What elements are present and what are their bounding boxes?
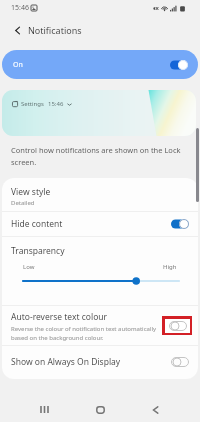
button[interactable]: Home [86,395,115,422]
staticText: Low [23,263,35,271]
staticText: On [13,60,23,70]
staticText: Notifications [28,24,82,36]
staticText: View style [11,186,51,198]
staticText: Control how notifications are shown on t… [11,145,191,168]
button[interactable]: Toggle off [169,321,187,331]
staticText: 15:46 [48,100,64,108]
button[interactable]: Recent apps [30,395,59,422]
staticText: Auto-reverse text colour [11,311,108,323]
button[interactable]: Auto-reverse text colour [2,305,198,345]
staticText: High [163,263,177,271]
button[interactable]: Back [6,19,28,41]
button[interactable]: Toggle on [171,219,189,229]
button[interactable]: Back [141,395,170,422]
button[interactable]: View style [2,178,198,211]
staticText: 15:46 [11,3,29,13]
staticText: Show on Always On Display [11,356,121,368]
staticText: Reverse the colour of notification text … [11,325,157,342]
button[interactable]: Toggle on [170,60,188,70]
staticText: Settings [21,100,44,108]
button[interactable]: On [2,50,198,79]
button[interactable]: Hide content [2,211,198,236]
staticText: Transparency [11,245,65,257]
button[interactable]: Show on Always On Display [2,345,198,379]
staticText: Detailed [11,199,35,207]
button[interactable]: Toggle off [171,357,189,367]
staticText: Hide content [11,218,63,230]
